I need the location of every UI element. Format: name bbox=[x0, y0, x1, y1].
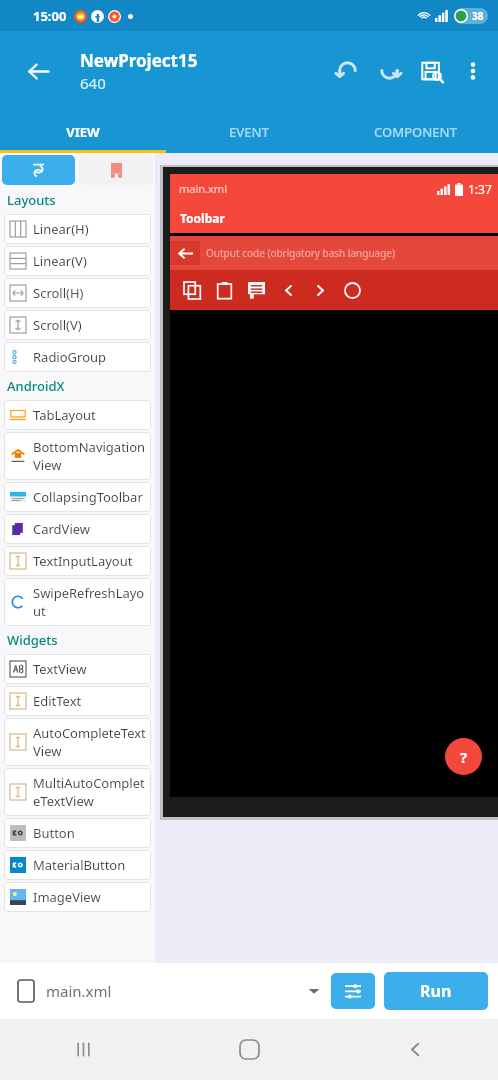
button[interactable]: Scroll(H) bbox=[4, 278, 151, 308]
button[interactable]: Save bbox=[410, 48, 452, 94]
staticText: AutoCompleteTextView bbox=[33, 724, 146, 760]
staticText: EditText bbox=[33, 692, 82, 710]
staticText: TextView bbox=[33, 660, 87, 678]
staticText: BottomNavigationView bbox=[33, 438, 146, 474]
button[interactable]: RadioGroup bbox=[4, 342, 151, 372]
button[interactable]: Paste bbox=[208, 273, 240, 307]
staticText: TextInputLayout bbox=[33, 552, 133, 570]
button[interactable]: ImageView bbox=[4, 882, 151, 912]
staticText: main.xml bbox=[46, 981, 112, 1001]
button[interactable]: AutoCompleteTextView bbox=[4, 718, 151, 766]
button[interactable]: SwipeRefreshLayout bbox=[4, 578, 151, 626]
staticText: 15:00 bbox=[33, 7, 67, 25]
button[interactable]: Copy bbox=[176, 273, 208, 307]
staticText: Linear(V) bbox=[33, 252, 87, 270]
button[interactable]: EditText bbox=[4, 686, 151, 716]
button[interactable]: CollapsingToolbar bbox=[4, 482, 151, 512]
button[interactable]: Scroll(V) bbox=[4, 310, 151, 340]
staticText: NewProject15 bbox=[80, 49, 198, 72]
button[interactable]: BottomNavigationView bbox=[4, 432, 151, 480]
button[interactable]: TextView bbox=[4, 654, 151, 684]
staticText: Button bbox=[33, 824, 75, 842]
staticText: SwipeRefreshLayout bbox=[33, 584, 146, 620]
button[interactable]: MultiAutoCompleteTextView bbox=[4, 768, 151, 816]
staticText: TabLayout bbox=[33, 406, 96, 424]
button[interactable]: TextInputLayout bbox=[4, 546, 151, 576]
staticText: Scroll(V) bbox=[33, 316, 82, 334]
button[interactable]: TabLayout bbox=[4, 400, 151, 430]
button[interactable]: Next bbox=[304, 273, 336, 307]
button[interactable]: Favorites bbox=[79, 155, 153, 185]
button[interactable]: Undo bbox=[326, 48, 368, 94]
staticText: ImageView bbox=[33, 888, 101, 906]
staticText: Linear(H) bbox=[33, 220, 89, 238]
button[interactable]: Run bbox=[384, 972, 488, 1010]
staticText: AndroidX bbox=[7, 377, 65, 395]
button[interactable]: Back bbox=[170, 241, 200, 265]
staticText: CollapsingToolbar bbox=[33, 488, 143, 506]
button[interactable]: main.xml bbox=[10, 963, 331, 1019]
button[interactable]: Back bbox=[332, 1019, 498, 1080]
staticText: Toolbar bbox=[180, 210, 225, 226]
button[interactable]: More options bbox=[452, 48, 494, 94]
staticText: MultiAutoCompleteTextView bbox=[33, 774, 146, 810]
staticText: ? bbox=[460, 747, 468, 767]
staticText: Output code (obrigatory bash language) bbox=[206, 246, 395, 260]
staticText: VIEW bbox=[66, 123, 100, 141]
button[interactable]: COMPONENT bbox=[332, 110, 498, 153]
staticText: main.xml bbox=[179, 181, 227, 196]
staticText: Layouts bbox=[7, 191, 56, 209]
button[interactable]: Comment bbox=[240, 273, 272, 307]
button[interactable]: Button bbox=[4, 818, 151, 848]
button[interactable]: Previous bbox=[272, 273, 304, 307]
staticText: COMPONENT bbox=[374, 123, 457, 141]
staticText: EVENT bbox=[229, 123, 269, 141]
button[interactable]: Record bbox=[336, 273, 368, 307]
staticText: Run bbox=[420, 980, 452, 1002]
button[interactable]: Help bbox=[445, 738, 482, 775]
button[interactable]: Home bbox=[166, 1019, 332, 1080]
staticText: 640 bbox=[80, 73, 106, 93]
button[interactable]: MaterialButton bbox=[4, 850, 151, 880]
button[interactable]: Linear(V) bbox=[4, 246, 151, 276]
staticText: Widgets bbox=[7, 631, 58, 649]
staticText: CardView bbox=[33, 520, 91, 538]
button[interactable]: Back bbox=[18, 51, 58, 91]
staticText: 1:37 bbox=[468, 181, 492, 197]
button[interactable]: Recent apps bbox=[0, 1019, 166, 1080]
staticText: 38 bbox=[472, 9, 484, 23]
button[interactable]: Linear(H) bbox=[4, 214, 151, 244]
staticText: MaterialButton bbox=[33, 856, 126, 874]
button[interactable]: VIEW bbox=[0, 110, 166, 153]
button[interactable]: EVENT bbox=[166, 110, 332, 153]
button[interactable]: CardView bbox=[4, 514, 151, 544]
staticText: Scroll(H) bbox=[33, 284, 84, 302]
staticText: RadioGroup bbox=[33, 348, 107, 366]
button[interactable]: Settings bbox=[331, 973, 375, 1009]
button[interactable]: Redo bbox=[368, 48, 410, 94]
button[interactable]: Palette bbox=[2, 155, 75, 185]
